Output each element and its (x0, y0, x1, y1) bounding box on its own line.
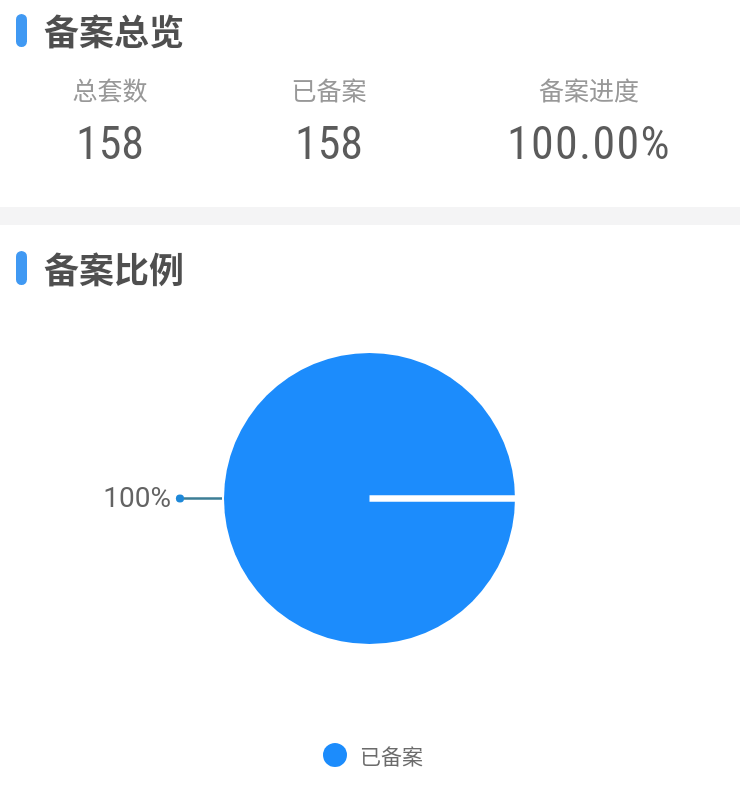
button[interactable]: 总套数 (0, 0, 240, 180)
staticText: 备案总览 (44, 4, 185, 55)
staticText: 备案比例 (44, 242, 185, 293)
staticText: 已备案 (360, 740, 423, 770)
staticText: 备案进度 (459, 71, 719, 107)
staticText: 158 (0, 116, 240, 170)
staticText: 已备案 (199, 71, 459, 107)
button[interactable]: 已备案 (199, 0, 459, 180)
button[interactable]: 已备案 (323, 740, 423, 770)
staticText: 158 (199, 116, 459, 170)
staticText: 100.00% (459, 116, 719, 170)
staticText: 总套数 (0, 71, 240, 107)
button[interactable]: 备案进度 (459, 0, 719, 180)
button[interactable]: 备案比例饼图 (224, 353, 515, 644)
staticText: 100% (58, 481, 171, 514)
